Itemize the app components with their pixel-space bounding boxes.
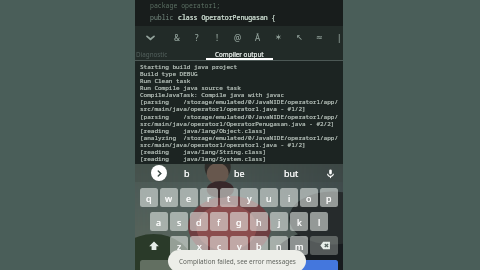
staticText: &	[174, 32, 180, 43]
staticText: ✶	[275, 33, 282, 42]
button[interactable]: Insert symbol	[187, 26, 207, 49]
button[interactable]: v	[230, 236, 248, 255]
button[interactable]: Insert symbol	[248, 26, 268, 49]
staticText: Run Clean task	[140, 77, 191, 85]
button[interactable]: j	[270, 212, 288, 231]
button[interactable]: Backspace	[310, 236, 338, 255]
button[interactable]: Insert symbol	[140, 26, 160, 49]
button[interactable]: f	[210, 212, 228, 231]
staticText: [analyzing /storage/emulated/0/JavaNIDE/…	[140, 134, 339, 142]
staticText: w	[165, 192, 173, 204]
staticText: x	[197, 240, 202, 252]
button[interactable]: r	[200, 188, 218, 207]
staticText: d	[196, 216, 202, 228]
button[interactable]: Enter	[288, 260, 338, 270]
staticText: src/main/java/operator1/OperatorPenugasa…	[140, 120, 335, 128]
staticText: Build type DEBUG	[140, 70, 198, 78]
staticText: [parsing /storage/emulated/0/JavaNIDE/op…	[140, 113, 339, 121]
staticText: but	[284, 167, 299, 179]
button[interactable]: e	[180, 188, 198, 207]
staticText: public	[150, 13, 178, 22]
button[interactable]: Diagnostic	[135, 49, 206, 60]
staticText: class OperatorPenugasan {	[178, 13, 276, 22]
staticText: [parsing /storage/emulated/0/JavaNIDE/op…	[140, 98, 339, 106]
button[interactable]: be	[213, 164, 265, 182]
staticText: f	[217, 216, 221, 228]
button[interactable]: s	[170, 212, 188, 231]
button[interactable]: z	[170, 236, 188, 255]
button[interactable]: q	[140, 188, 158, 207]
button[interactable]: i	[280, 188, 298, 207]
staticText: Starting build java project	[140, 63, 238, 71]
staticText: CompileJavaTask: Compile java with javac	[140, 91, 285, 99]
staticText: y	[247, 192, 252, 204]
button[interactable]: b	[161, 164, 213, 182]
staticText: a	[156, 216, 162, 228]
staticText: Compiler output	[215, 50, 264, 59]
button[interactable]: b	[250, 236, 268, 255]
button[interactable]: y	[240, 188, 258, 207]
staticText: t	[227, 192, 231, 204]
staticText: q	[146, 192, 152, 204]
staticText: l	[318, 216, 321, 228]
button[interactable]: Space	[178, 260, 286, 270]
button[interactable]: but	[265, 164, 317, 182]
button[interactable]: Insert symbol	[289, 26, 309, 49]
button[interactable]: Insert symbol	[207, 26, 227, 49]
button[interactable]: a	[150, 212, 168, 231]
staticText: i	[288, 192, 291, 204]
staticText: src/main/java/operator1/operator1.java -…	[140, 105, 306, 113]
staticText: r	[207, 192, 211, 204]
staticText: @	[234, 32, 242, 43]
button[interactable]: Insert symbol	[228, 26, 248, 49]
staticText: k	[297, 216, 302, 228]
staticText: |	[337, 32, 342, 43]
button[interactable]: d	[190, 212, 208, 231]
staticText: c	[217, 240, 222, 252]
button[interactable]: Compiler output	[206, 49, 273, 60]
button[interactable]: p	[320, 188, 338, 207]
button[interactable]: x	[190, 236, 208, 255]
button[interactable]: l	[310, 212, 328, 231]
staticText: be	[234, 167, 245, 179]
staticText: v	[237, 240, 242, 252]
button[interactable]: g	[230, 212, 248, 231]
staticText: g	[236, 216, 242, 228]
button[interactable]: w	[160, 188, 178, 207]
staticText: ?	[195, 32, 199, 43]
staticText: Compilation failed, see error messages	[179, 257, 296, 266]
staticText: Å	[255, 32, 261, 43]
staticText: Run Compile java source task	[140, 84, 241, 92]
button[interactable]: t	[220, 188, 238, 207]
staticText: ↖	[296, 33, 303, 42]
staticText: Diagnostic	[136, 50, 168, 59]
staticText: !	[216, 32, 219, 43]
button[interactable]: More suggestions	[144, 164, 174, 182]
staticText: z	[177, 240, 182, 252]
staticText: u	[266, 192, 272, 204]
button[interactable]: Insert symbol	[268, 26, 288, 49]
button[interactable]: o	[300, 188, 318, 207]
staticText: b	[256, 240, 262, 252]
button[interactable]: c	[210, 236, 228, 255]
button[interactable]: u	[260, 188, 278, 207]
button[interactable]: m	[290, 236, 308, 255]
button[interactable]: h	[250, 212, 268, 231]
button[interactable]: Insert symbol	[309, 26, 329, 49]
staticText: e	[186, 192, 192, 204]
button[interactable]: Numbers	[140, 260, 176, 270]
button[interactable]: k	[290, 212, 308, 231]
button[interactable]: n	[270, 236, 288, 255]
staticText: b	[184, 167, 190, 179]
staticText: p	[326, 192, 332, 204]
button[interactable]: Voice input	[317, 164, 343, 182]
staticText: s	[177, 216, 182, 228]
staticText: src/main/java/operator1/operator1.java -…	[140, 141, 306, 149]
staticText: h	[256, 216, 262, 228]
staticText: m	[295, 240, 304, 252]
button[interactable]: Shift	[140, 236, 168, 255]
staticText: ≈	[316, 33, 323, 42]
staticText: [reading java/lang/System.class]	[140, 155, 267, 163]
button[interactable]: Insert symbol	[329, 26, 343, 49]
button[interactable]: Insert symbol	[167, 26, 187, 49]
